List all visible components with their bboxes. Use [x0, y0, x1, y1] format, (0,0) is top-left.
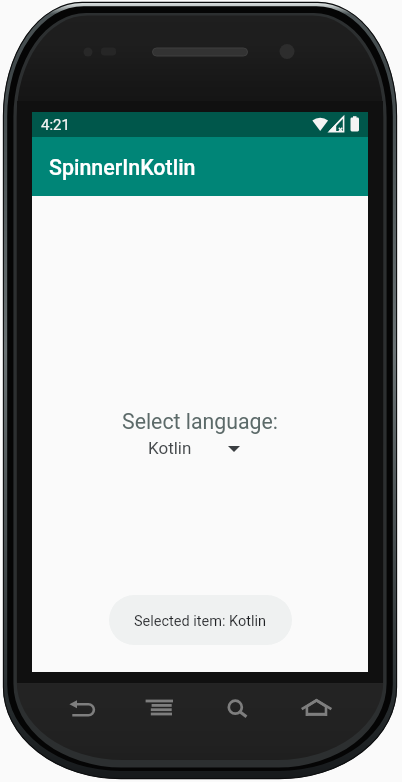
button[interactable]: Back	[60, 686, 110, 726]
staticText: Selected item: Kotlin	[134, 613, 267, 630]
staticText: 4:21	[41, 116, 70, 134]
staticText: Select language:	[32, 409, 368, 434]
button[interactable]: Home	[292, 686, 342, 726]
button[interactable]: Search	[212, 686, 262, 726]
staticText: SpinnerInKotlin	[49, 155, 196, 180]
button[interactable]: Kotlin	[142, 434, 264, 460]
staticText: Kotlin	[148, 438, 192, 458]
button[interactable]: Menu	[135, 686, 185, 726]
